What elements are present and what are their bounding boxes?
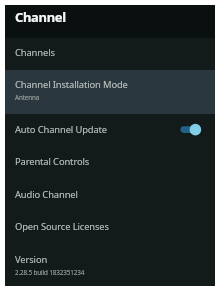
button[interactable]: Channels (5, 38, 215, 71)
staticText: Channel (15, 8, 66, 26)
button[interactable]: Channel Installation Mode (5, 70, 215, 114)
staticText: Parental Controls (15, 155, 185, 168)
staticText: Auto Channel Update (15, 123, 185, 136)
staticText: Open Source Licenses (15, 220, 185, 233)
button[interactable]: Auto Channel Update toggle (178, 120, 204, 140)
staticText: Channel Installation Mode (15, 78, 185, 91)
staticText: Audio Channel (15, 188, 185, 201)
button[interactable]: Version (5, 244, 215, 287)
staticText: Version (15, 253, 185, 266)
button[interactable]: Open Source Licenses (5, 211, 215, 244)
staticText: 2.28.5 build 1832351234 (15, 268, 185, 277)
staticText: Antenna (15, 93, 185, 102)
staticText: Channels (15, 46, 185, 59)
button[interactable]: Audio Channel (5, 179, 215, 212)
button[interactable]: Auto Channel Update (5, 114, 215, 147)
button[interactable]: Parental Controls (5, 146, 215, 179)
